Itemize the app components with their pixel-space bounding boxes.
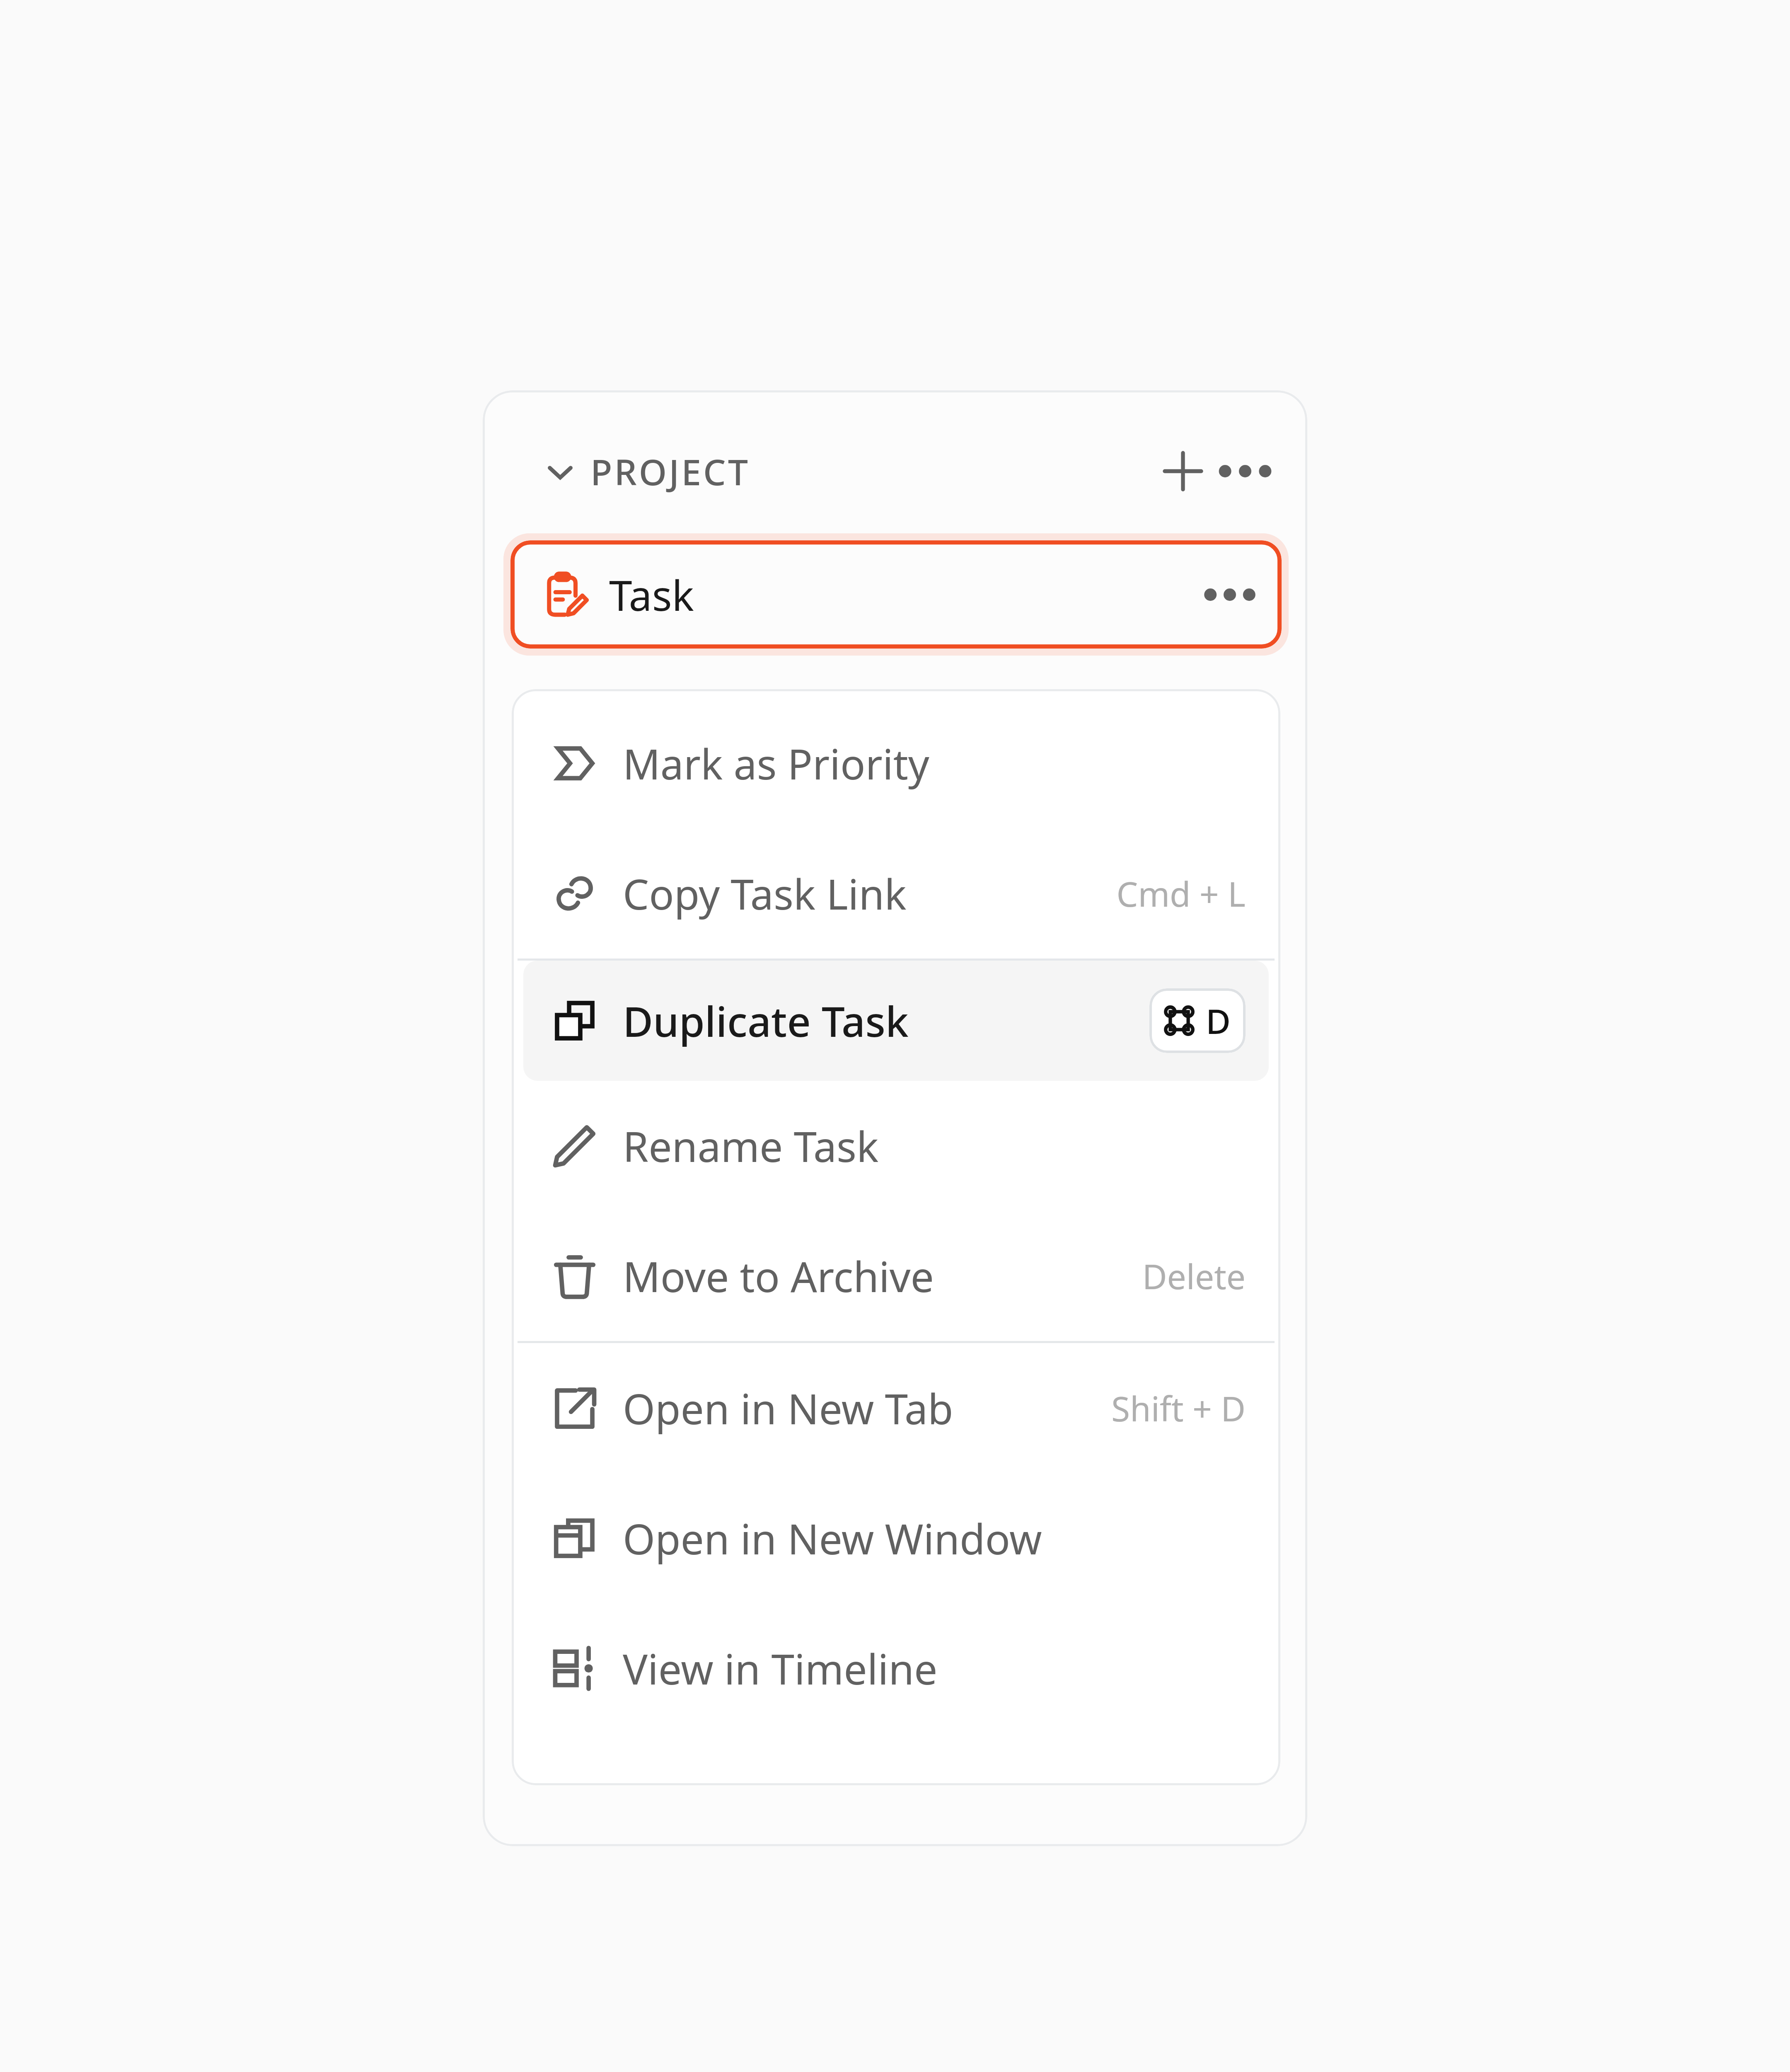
button[interactable]: Open in New Window: [523, 1473, 1269, 1603]
staticText: Rename Task: [623, 1118, 879, 1174]
button[interactable]: Rename Task: [523, 1081, 1269, 1211]
staticText: Task: [609, 566, 694, 623]
staticText: Cmd + L: [1116, 870, 1246, 917]
staticText: PROJECT: [590, 447, 750, 496]
staticText: Duplicate Task: [623, 992, 909, 1049]
button[interactable]: Task options: [1203, 568, 1257, 622]
button[interactable]: Copy Task Link: [523, 828, 1269, 959]
button[interactable]: Duplicate Task: [523, 961, 1269, 1081]
button[interactable]: PROJECT: [537, 443, 755, 500]
staticText: View in Timeline: [623, 1640, 938, 1697]
button[interactable]: Mark as Priority: [523, 698, 1269, 828]
staticText: Shift + D: [1111, 1385, 1246, 1431]
button[interactable]: Open in New Tab: [523, 1343, 1269, 1473]
staticText: Delete: [1142, 1253, 1246, 1299]
staticText: Move to Archive: [623, 1248, 934, 1304]
staticText: Mark as Priority: [623, 735, 929, 792]
button[interactable]: Move to Archive: [523, 1211, 1269, 1341]
button[interactable]: Task: [510, 540, 1282, 649]
button[interactable]: Add: [1154, 442, 1212, 500]
staticText: Open in New Tab: [623, 1380, 953, 1436]
staticText: Copy Task Link: [623, 865, 907, 922]
staticText: D: [1206, 997, 1231, 1044]
button[interactable]: View in Timeline: [523, 1603, 1269, 1733]
staticText: Open in New Window: [623, 1510, 1042, 1566]
button[interactable]: More options: [1216, 442, 1274, 500]
